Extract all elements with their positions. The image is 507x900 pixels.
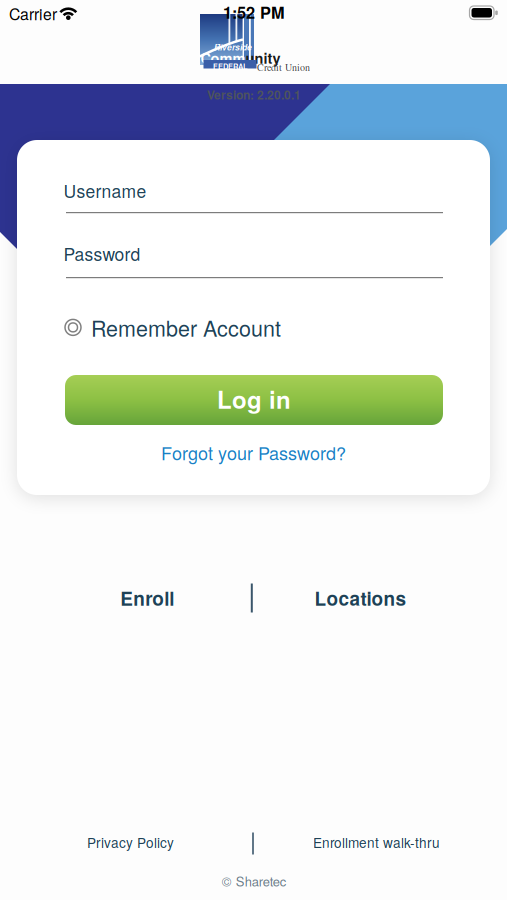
staticText: unity xyxy=(245,47,280,68)
button[interactable]: Password xyxy=(66,246,443,279)
button[interactable]: Enrollment walk-thru xyxy=(291,828,461,856)
button[interactable]: Privacy Policy xyxy=(55,828,205,856)
staticText: Username xyxy=(63,178,146,203)
staticText: © Sharetec xyxy=(222,872,287,890)
staticText: Enrollment walk-thru xyxy=(313,832,440,852)
staticText: Comm xyxy=(200,47,245,68)
staticText: Log in xyxy=(217,382,291,416)
button[interactable]: Forgot your Password? xyxy=(161,440,346,465)
staticText: 1:52 PM xyxy=(223,0,285,24)
staticText: Carrier xyxy=(9,2,57,25)
staticText: Riverside xyxy=(214,41,252,53)
staticText: Password xyxy=(63,241,140,266)
button[interactable]: Log in xyxy=(65,375,443,425)
button[interactable]: Enroll xyxy=(62,578,232,618)
staticText: Enroll xyxy=(120,584,174,612)
button[interactable]: Locations xyxy=(275,578,445,618)
staticText: Credit Union xyxy=(257,60,310,74)
staticText: Privacy Policy xyxy=(87,832,174,852)
button[interactable]: Remember Account xyxy=(64,312,281,343)
staticText: Version: 2.20.0.1 xyxy=(207,86,301,103)
staticText: Remember Account xyxy=(91,312,281,343)
staticText: FEDERAL xyxy=(213,61,248,72)
staticText: Locations xyxy=(314,584,406,612)
staticText: Forgot your Password? xyxy=(161,440,346,465)
button[interactable]: Username xyxy=(66,183,443,214)
